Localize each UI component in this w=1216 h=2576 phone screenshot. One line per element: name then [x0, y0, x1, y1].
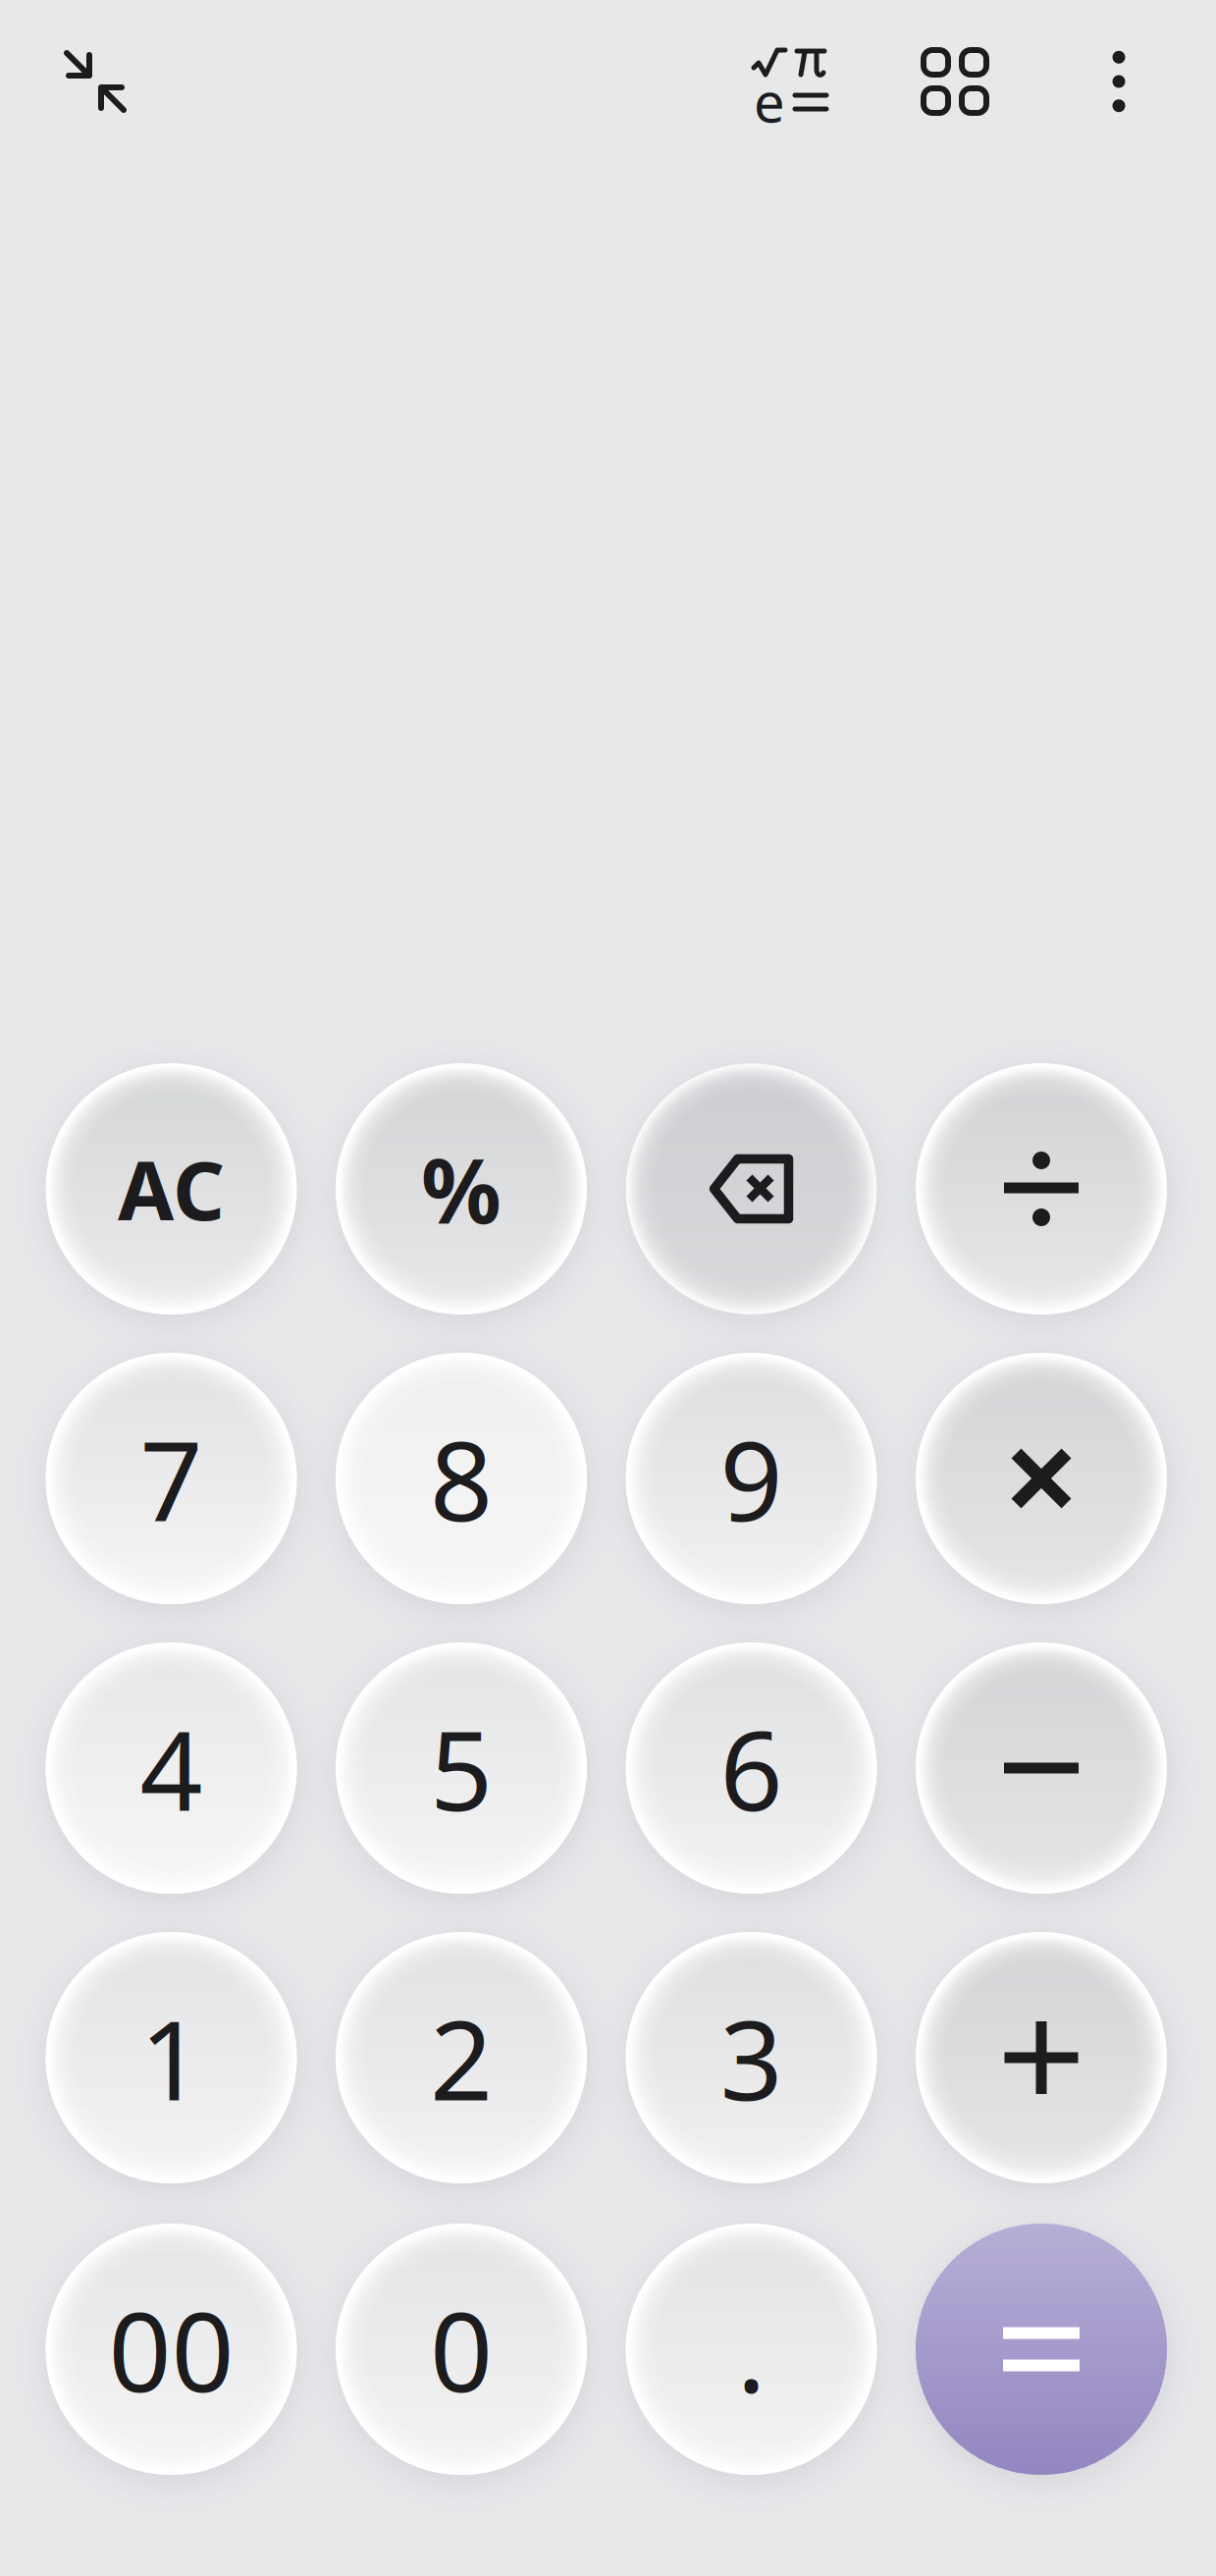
button[interactable]: [46, 1642, 297, 1894]
staticText: 3: [720, 1985, 783, 2131]
button[interactable]: [626, 1353, 877, 1604]
button[interactable]: Multiply: [916, 1353, 1167, 1604]
button[interactable]: [336, 1642, 587, 1894]
button[interactable]: [46, 1932, 297, 2183]
staticText: 9: [720, 1405, 783, 1551]
staticText: 7: [140, 1405, 203, 1551]
button[interactable]: Unit converter: [900, 27, 1010, 136]
button[interactable]: All clear: [46, 1063, 297, 1315]
button[interactable]: Divide: [916, 1063, 1167, 1315]
staticText: e: [754, 65, 785, 138]
button[interactable]: More options: [1070, 27, 1168, 136]
staticText: 4: [140, 1695, 203, 1841]
staticText: 2: [430, 1985, 493, 2131]
button[interactable]: [336, 1353, 587, 1604]
button[interactable]: [336, 2224, 587, 2475]
button[interactable]: Plus: [916, 1932, 1167, 2183]
button[interactable]: [336, 1932, 587, 2183]
button[interactable]: Collapse: [40, 27, 150, 136]
staticText: 00: [108, 2276, 234, 2422]
button[interactable]: [46, 2224, 297, 2475]
staticText: 5: [430, 1695, 493, 1841]
button[interactable]: [626, 2224, 877, 2475]
staticText: %: [421, 1130, 502, 1248]
button[interactable]: Equals: [916, 2224, 1167, 2475]
staticText: 1: [140, 1985, 203, 2131]
button[interactable]: Backspace: [626, 1063, 877, 1315]
staticText: AC: [118, 1135, 225, 1243]
button[interactable]: Percent: [336, 1063, 587, 1315]
button[interactable]: Minus: [916, 1642, 1167, 1894]
button[interactable]: [626, 1642, 877, 1894]
staticText: 0: [430, 2276, 493, 2422]
button[interactable]: [626, 1932, 877, 2183]
button[interactable]: Scientific calculator: [735, 27, 845, 137]
staticText: 6: [720, 1695, 783, 1841]
staticText: 8: [430, 1405, 493, 1551]
button[interactable]: [46, 1353, 297, 1604]
staticText: .: [737, 2276, 766, 2422]
